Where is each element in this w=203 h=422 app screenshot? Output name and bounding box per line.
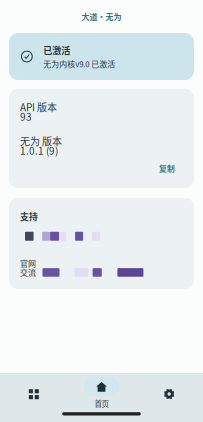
button[interactable]: 设置 [135, 373, 203, 406]
staticText: 93 [20, 109, 32, 124]
staticText: 已激活 [43, 43, 70, 57]
button[interactable]: 复制 [153, 159, 185, 178]
button[interactable]: 首页 [68, 373, 135, 406]
button[interactable]: 模块 [0, 373, 68, 406]
staticText: 1.0.1 (9) [20, 143, 58, 158]
staticText: API 版本 [20, 100, 57, 114]
staticText: 交流 [20, 266, 36, 278]
staticText: 无为 版本 [20, 134, 62, 148]
staticText: 官网 [20, 257, 36, 269]
staticText: 无为内核v9.0 已激活 [43, 58, 115, 69]
staticText: 大道·无为 [81, 11, 121, 22]
staticText: 首页 [94, 398, 108, 409]
staticText: 复制 [159, 163, 175, 174]
staticText: 支持 [20, 210, 38, 223]
